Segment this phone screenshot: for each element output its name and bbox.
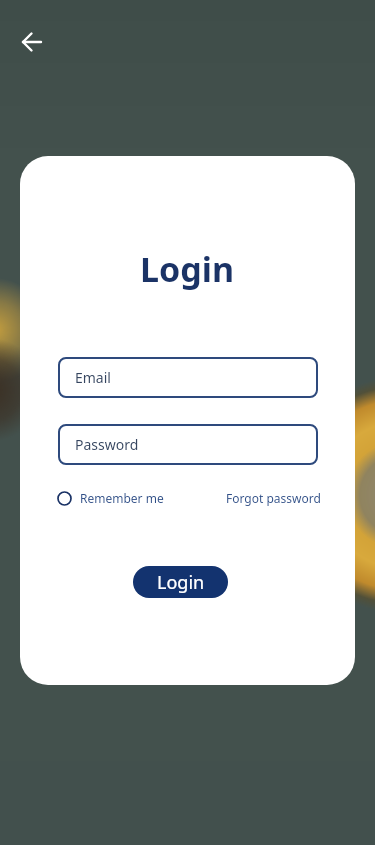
staticText: Email (75, 368, 111, 387)
staticText: Password (75, 435, 139, 454)
staticText: Remember me (80, 490, 164, 506)
staticText: Forgot password (226, 490, 321, 506)
button[interactable]: Password (58, 424, 318, 465)
button[interactable]: Forgot password (226, 490, 321, 506)
staticText: Login (140, 246, 235, 292)
button[interactable]: Login (133, 566, 228, 598)
staticText: Login (157, 570, 205, 595)
button[interactable]: Remember me (57, 490, 164, 506)
button[interactable] (14, 24, 50, 60)
button[interactable]: Email (58, 357, 318, 398)
